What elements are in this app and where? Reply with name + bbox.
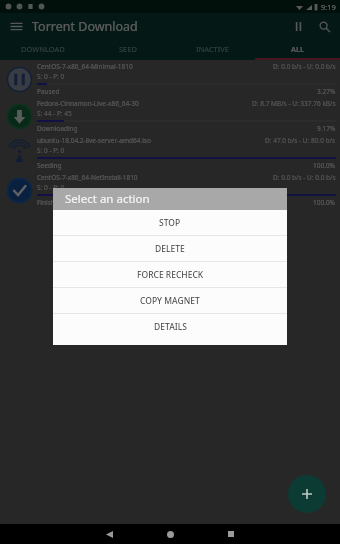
button[interactable]: COPY MAGNET <box>53 288 287 313</box>
staticText: DOWNLOAD <box>21 44 65 54</box>
button[interactable]: CentOS-7-x86_64-NetInstall-1810 <box>0 171 340 208</box>
staticText: Select an action <box>65 191 150 207</box>
staticText: D: 8.7 MB/s - U: 337.76 kB/s <box>252 99 336 108</box>
button[interactable]: DOWNLOAD <box>0 39 85 58</box>
button[interactable]: DETAILS <box>53 314 287 339</box>
staticText: 100.0% <box>313 161 336 170</box>
staticText: S: 0 - P: 0 <box>37 183 65 192</box>
button[interactable]: Pause all <box>288 16 308 36</box>
staticText: 100.0% <box>313 198 336 207</box>
staticText: D: 0.0 b/s - U: 0.0 b/s <box>273 62 336 71</box>
button[interactable]: Add torrent <box>288 475 326 513</box>
staticText: D: 47.0 b/s - U: 80.0 b/s <box>265 136 336 145</box>
staticText: DELETE <box>155 243 185 255</box>
staticText: CentOS-7-x86_64-Minimal-1810 <box>37 62 133 71</box>
staticText: Paused <box>37 87 60 96</box>
button[interactable]: Home <box>161 525 179 543</box>
staticText: ubuntu-18.04.2-live-server-amd64.iso <box>37 136 151 145</box>
staticText: Finished <box>37 198 63 207</box>
button[interactable]: DELETE <box>53 236 287 261</box>
staticText: 9.17% <box>317 124 336 133</box>
staticText: 3.27% <box>317 87 336 96</box>
staticText: CentOS-7-x86_64-NetInstall-1810 <box>37 173 138 182</box>
staticText: S: 0 - P: 0 <box>37 146 65 155</box>
button[interactable]: SEED <box>85 39 170 58</box>
button[interactable]: ubuntu-18.04.2-live-server-amd64.iso <box>0 134 340 171</box>
staticText: STOP <box>159 217 181 229</box>
staticText: DETAILS <box>154 321 187 333</box>
button[interactable]: Open navigation menu <box>6 16 26 36</box>
button[interactable]: Search <box>314 16 334 36</box>
staticText: 9:19 <box>321 2 336 12</box>
button[interactable]: Fedora-Cinnamon-Live-x86_64-30 <box>0 97 340 134</box>
button[interactable]: INACTIVE <box>170 39 255 58</box>
staticText: Downloading <box>37 124 78 133</box>
staticText: COPY MAGNET <box>140 295 200 307</box>
staticText: Torrent Download <box>32 18 138 35</box>
staticText: FORCE RECHECK <box>137 269 204 281</box>
staticText: ALL <box>291 44 304 54</box>
staticText: S: 0 - P: 0 <box>37 72 65 81</box>
button[interactable]: Back <box>100 525 118 543</box>
staticText: Fedora-Cinnamon-Live-x86_64-30 <box>37 99 139 108</box>
button[interactable]: FORCE RECHECK <box>53 262 287 287</box>
staticText: SEED <box>119 44 137 54</box>
button[interactable]: STOP <box>53 210 287 235</box>
button[interactable]: CentOS-7-x86_64-Minimal-1810 <box>0 60 340 97</box>
button[interactable]: Recents <box>222 525 240 543</box>
staticText: INACTIVE <box>196 44 230 54</box>
staticText: Seeding <box>37 161 62 170</box>
staticText: S: 44 - P: 45 <box>37 109 72 118</box>
staticText: D: 0.0 b/s - U: 0.0 b/s <box>273 173 336 182</box>
button[interactable]: ALL <box>255 39 340 58</box>
